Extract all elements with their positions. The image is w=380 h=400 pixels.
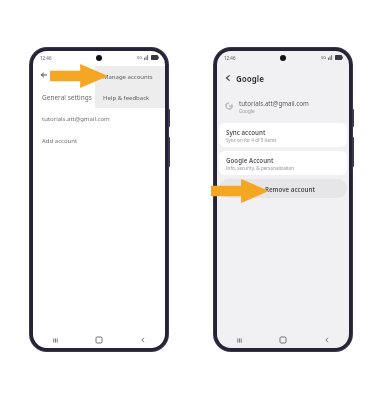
- staticText: Add account: [42, 137, 78, 145]
- button[interactable]: Google Account: [219, 151, 347, 175]
- staticText: Remove account: [265, 185, 315, 193]
- button[interactable]: tutorials.att@gmail.com: [33, 108, 165, 130]
- button[interactable]: Help & feedback: [95, 87, 165, 108]
- button[interactable]: Back: [33, 64, 165, 86]
- button[interactable]: Home: [77, 332, 121, 348]
- staticText: Google Account: [226, 156, 274, 164]
- staticText: Manage accounts: [103, 73, 153, 81]
- staticText: tutorials.att@gmail.com: [42, 115, 110, 123]
- button[interactable]: Add account: [33, 130, 165, 152]
- button[interactable]: Back: [39, 70, 49, 80]
- button[interactable]: Sync account: [219, 123, 347, 147]
- button[interactable]: Back: [217, 68, 349, 88]
- staticText: Help & feedback: [103, 94, 150, 102]
- staticText: 5G: [321, 55, 327, 60]
- button[interactable]: Back: [305, 332, 349, 348]
- staticText: tutorials.att@gmail.com: [239, 99, 309, 107]
- staticText: 12:46: [224, 55, 236, 61]
- button[interactable]: Back: [223, 73, 233, 83]
- staticText: General settings: [42, 93, 92, 102]
- button[interactable]: Recents: [217, 332, 261, 348]
- button[interactable]: tutorials.att@gmail.com: [217, 94, 349, 118]
- button[interactable]: Remove account: [219, 179, 347, 198]
- staticText: Sync on for 4 of 5 items: [226, 137, 277, 143]
- staticText: Sync account: [226, 128, 266, 136]
- button[interactable]: Back: [121, 332, 165, 348]
- staticText: Google: [236, 73, 265, 84]
- button[interactable]: Recents: [33, 332, 77, 348]
- staticText: Google: [239, 108, 255, 114]
- staticText: 5G: [137, 55, 143, 60]
- button[interactable]: Manage accounts: [95, 66, 165, 87]
- staticText: 12:46: [40, 55, 52, 61]
- button[interactable]: Home: [261, 332, 305, 348]
- button[interactable]: General settings: [33, 86, 165, 108]
- staticText: Info, security, & personalization: [226, 165, 295, 171]
